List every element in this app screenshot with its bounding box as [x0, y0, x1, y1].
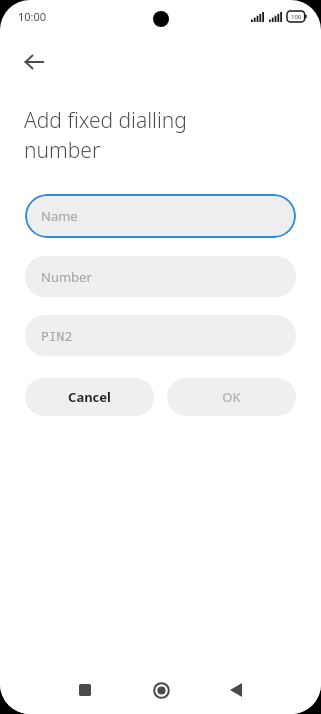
- button[interactable]: Name: [25, 194, 296, 238]
- staticText: Add fixed dialling number: [24, 106, 261, 164]
- staticText: Cancel: [68, 388, 111, 406]
- staticText: OK: [222, 388, 241, 406]
- button[interactable]: Home: [140, 669, 182, 711]
- staticText: PIN2: [41, 327, 73, 345]
- staticText: Name: [41, 207, 78, 225]
- staticText: 100: [291, 13, 302, 21]
- staticText: 10:00: [18, 9, 47, 24]
- button[interactable]: Back: [215, 669, 257, 711]
- button[interactable]: Number: [25, 256, 296, 297]
- button[interactable]: Cancel: [25, 378, 154, 416]
- button[interactable]: Recent apps: [64, 669, 106, 711]
- button[interactable]: Back: [12, 40, 56, 84]
- staticText: Number: [41, 268, 92, 286]
- button[interactable]: OK: [167, 378, 296, 416]
- button[interactable]: PIN2: [25, 315, 296, 356]
